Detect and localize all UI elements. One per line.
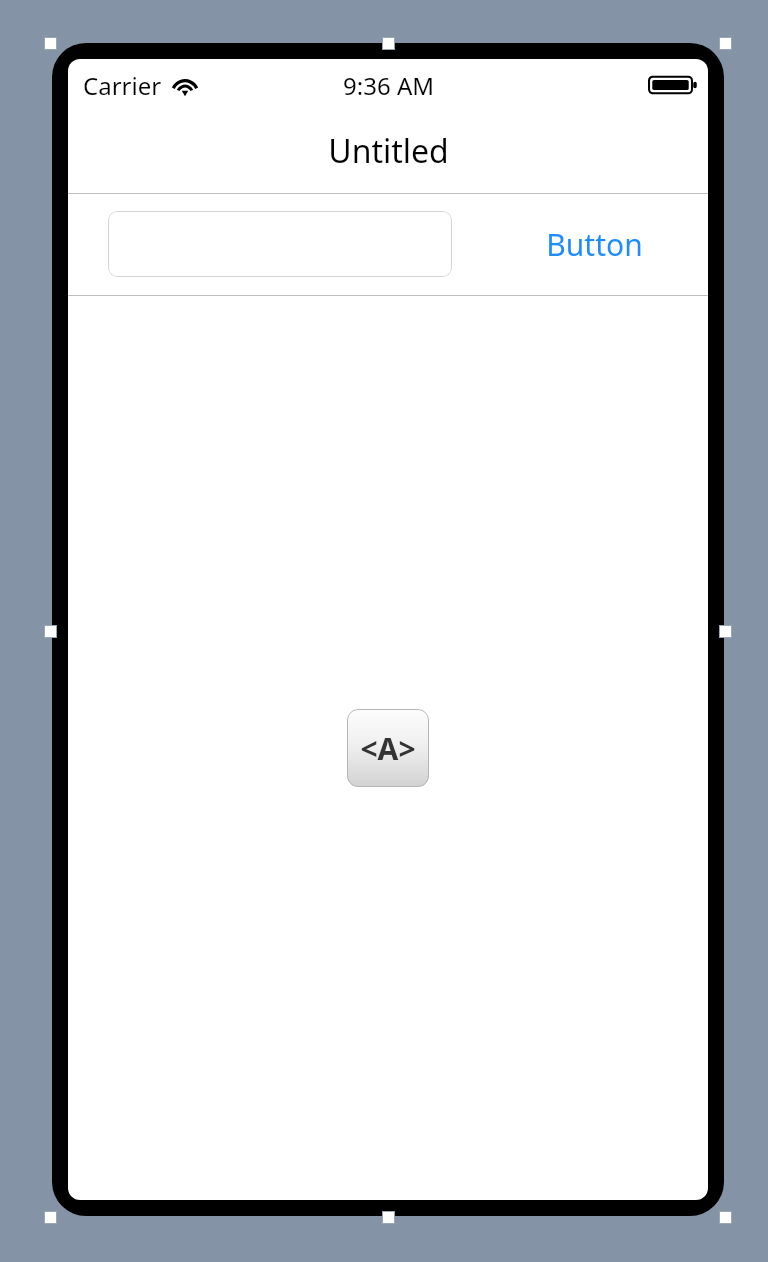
staticText: <A> (360, 728, 416, 769)
staticText: Button (546, 224, 643, 265)
button[interactable]: Button (508, 211, 680, 277)
staticText: 9:36 AM (343, 69, 434, 102)
other: Wi-Fi signal (171, 73, 199, 97)
staticText: Untitled (328, 129, 449, 173)
other: Battery full (648, 73, 698, 97)
button[interactable]: Source code element (347, 709, 429, 787)
button[interactable] (108, 211, 452, 277)
staticText: Carrier (83, 69, 162, 102)
